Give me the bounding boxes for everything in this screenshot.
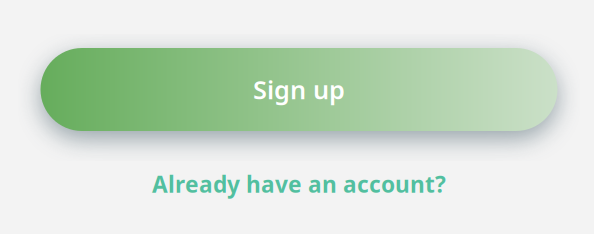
button[interactable]: Already have an account? (152, 169, 446, 199)
staticText: Sign up (253, 73, 345, 106)
staticText: Already have an account? (152, 169, 446, 199)
button[interactable]: Sign up (40, 48, 557, 131)
